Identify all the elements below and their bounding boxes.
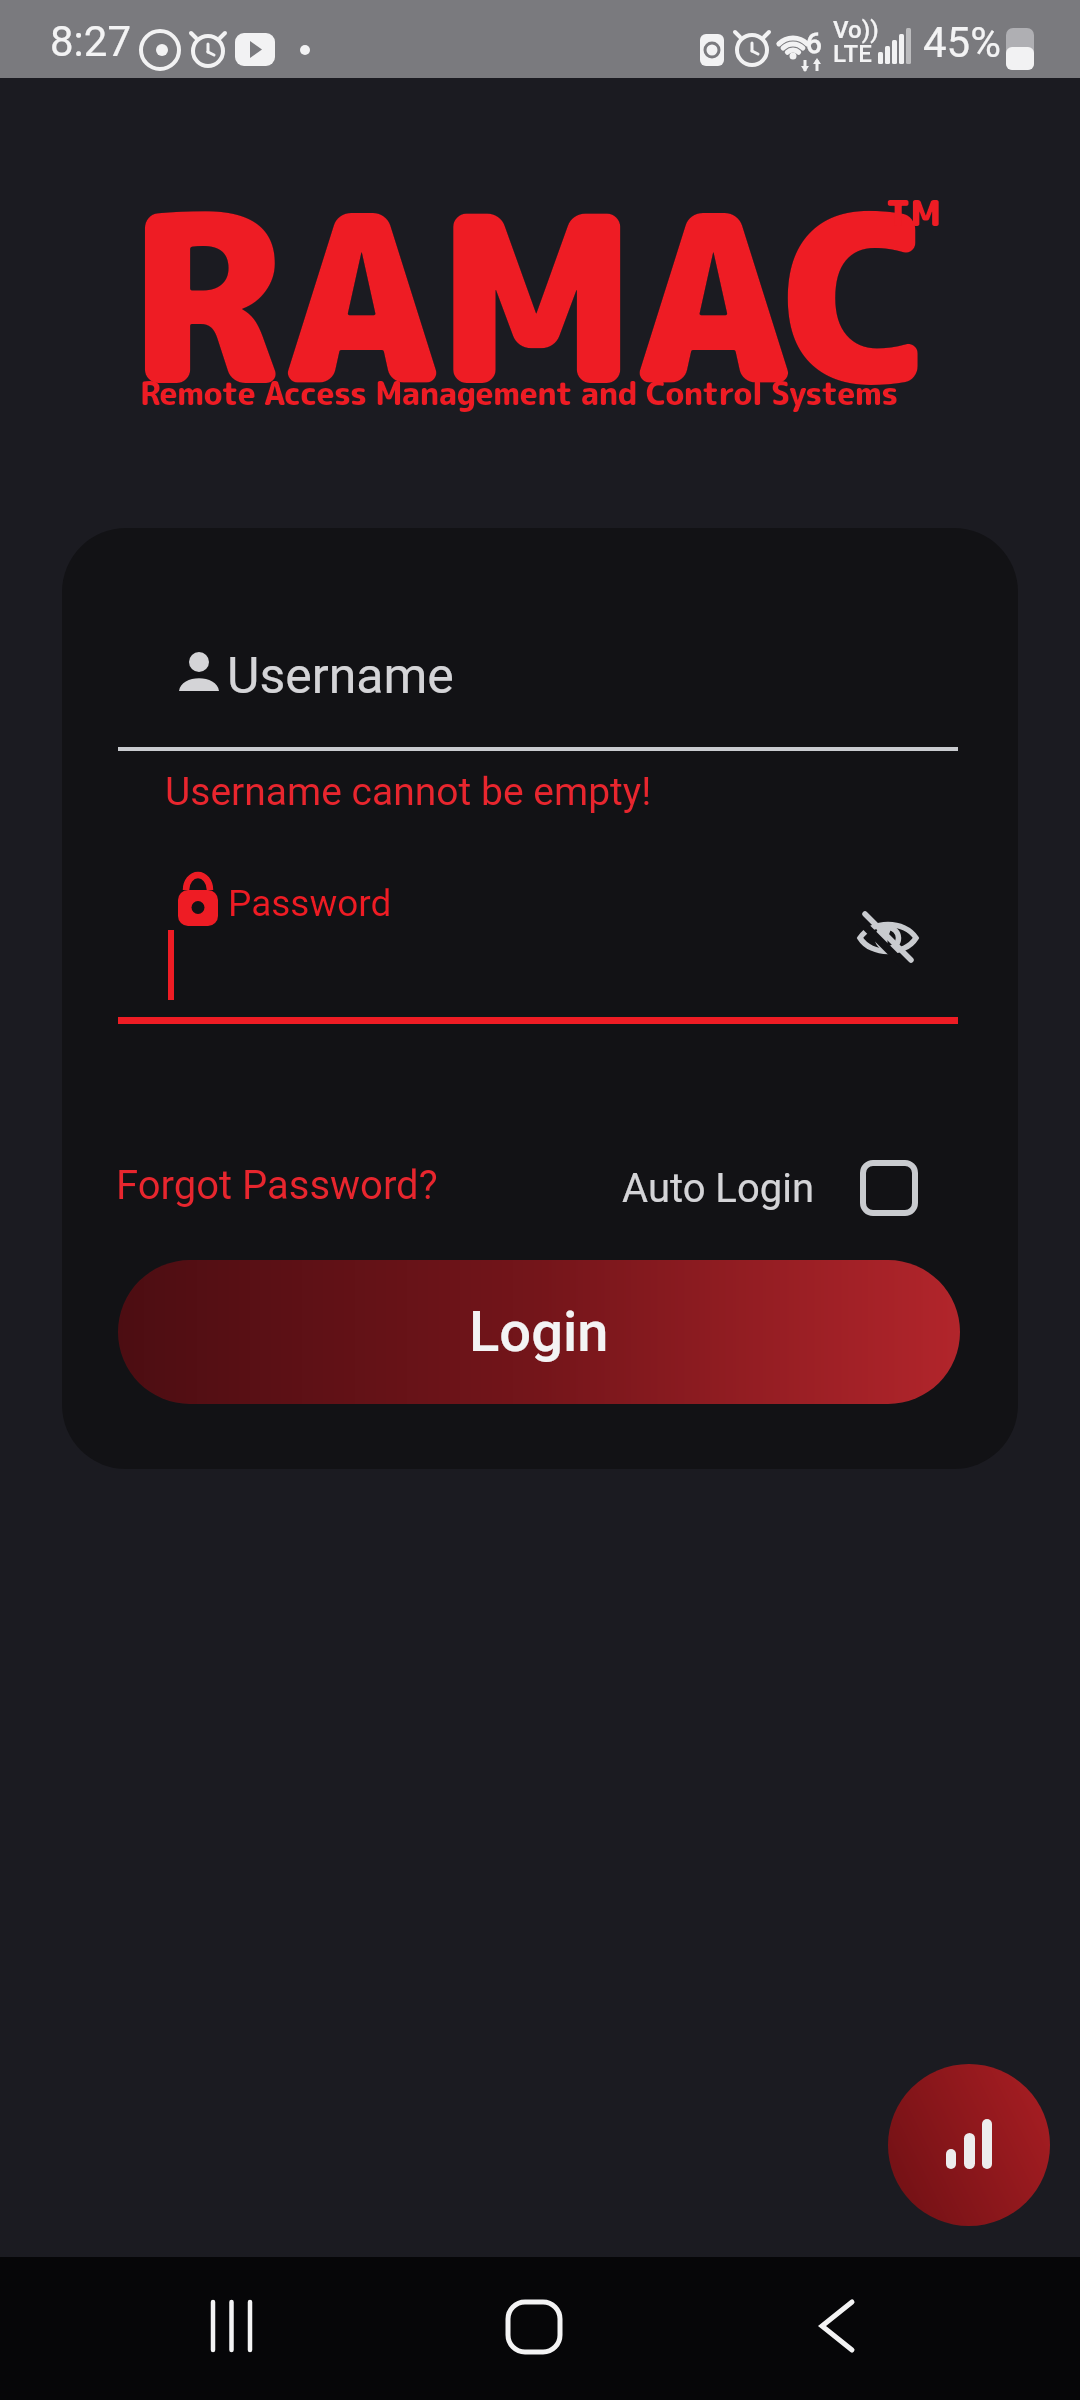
button[interactable] <box>760 2257 910 2400</box>
staticText: Password <box>228 882 392 925</box>
staticText: TM <box>886 187 942 237</box>
staticText: Login <box>469 1299 609 1365</box>
staticText: 6 <box>806 27 822 60</box>
button[interactable] <box>460 2257 610 2400</box>
button[interactable] <box>832 888 942 988</box>
staticText: RAMAC <box>128 134 931 458</box>
button[interactable] <box>888 2064 1050 2226</box>
staticText: Remote Access Management and Control Sys… <box>140 371 898 416</box>
staticText: Forgot Password? <box>116 1162 438 1209</box>
staticText: Vo)) <box>833 16 879 44</box>
staticText: Username <box>227 647 454 706</box>
button[interactable]: Forgot Password? <box>102 1138 522 1238</box>
staticText: 8:27 <box>50 17 131 66</box>
staticText: Auto Login <box>622 1165 814 1212</box>
button[interactable]: Auto Login <box>602 1138 982 1238</box>
staticText: 45% <box>923 18 1001 67</box>
button[interactable]: Login <box>118 1260 960 1404</box>
button[interactable] <box>160 2257 310 2400</box>
staticText: Username cannot be empty! <box>165 769 652 815</box>
staticText: LTE <box>833 40 872 68</box>
